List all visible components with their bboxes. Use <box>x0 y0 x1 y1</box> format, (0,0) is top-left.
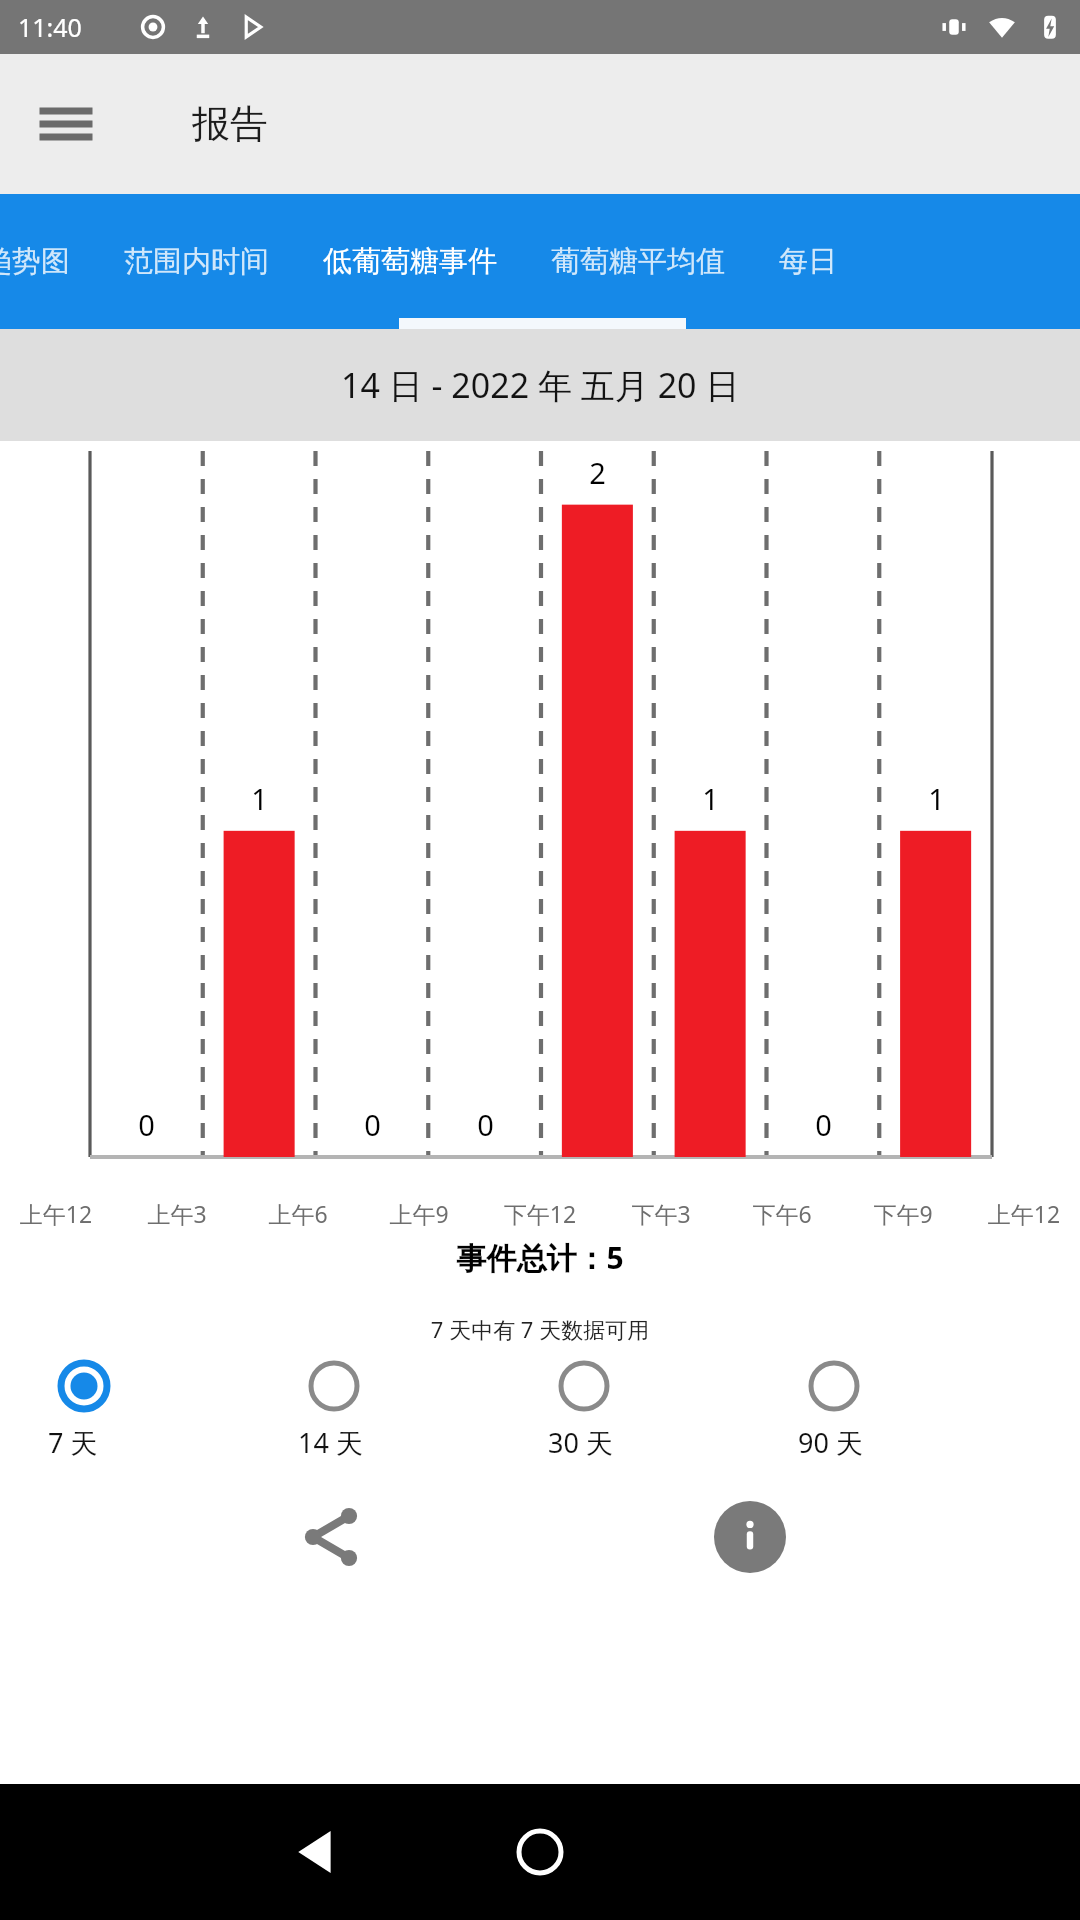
button[interactable]: 趋势图 <box>0 194 97 329</box>
staticText: 事件总计：5 <box>0 1237 1080 1278</box>
staticText: 1 <box>702 779 719 818</box>
staticText: 1 <box>928 779 945 818</box>
staticText: 下午12 <box>484 1198 596 1229</box>
button[interactable]: 低葡萄糖事件 <box>296 194 524 329</box>
staticText: 2 <box>589 453 606 492</box>
staticText: 下午3 <box>605 1198 717 1229</box>
staticText: 每日 <box>779 243 837 280</box>
staticText: 0 <box>815 1105 832 1144</box>
staticText: 低葡萄糖事件 <box>323 243 497 280</box>
staticText: 1 <box>251 779 268 818</box>
button[interactable]: 30 天 <box>540 1360 790 1461</box>
staticText: 上午9 <box>363 1198 475 1229</box>
button[interactable]: 14 天 <box>290 1360 540 1461</box>
staticText: 上午3 <box>121 1198 233 1229</box>
button[interactable]: 返回 <box>272 1806 364 1898</box>
button[interactable]: 范围内时间 <box>97 194 296 329</box>
staticText: 下午6 <box>726 1198 838 1229</box>
staticText: 14 天 <box>298 1424 363 1461</box>
staticText: 葡萄糖平均值 <box>551 243 725 280</box>
staticText: 上午12 <box>968 1198 1080 1229</box>
staticText: 0 <box>138 1105 155 1144</box>
staticText: 0 <box>364 1105 381 1144</box>
button[interactable]: 信息 <box>704 1491 796 1583</box>
button[interactable]: 葡萄糖平均值 <box>524 194 752 329</box>
button[interactable]: 每日 <box>752 194 864 329</box>
button[interactable]: 主屏幕 <box>494 1806 586 1898</box>
staticText: 90 天 <box>798 1424 863 1461</box>
staticText: 0 <box>477 1105 494 1144</box>
staticText: 7 天 <box>48 1424 98 1461</box>
staticText: 上午6 <box>242 1198 354 1229</box>
button[interactable]: 分享 <box>285 1491 377 1583</box>
staticText: 30 天 <box>548 1424 613 1461</box>
staticText: 7 天中有 7 天数据可用 <box>0 1314 1080 1344</box>
staticText: 14 日 - 2022 年 五月 20 日 <box>341 362 740 408</box>
staticText: 上午12 <box>0 1198 112 1229</box>
button[interactable]: 7 天 <box>40 1360 290 1461</box>
staticText: 11:40 <box>18 10 82 44</box>
staticText: 报告 <box>192 100 268 148</box>
button[interactable]: 菜单 <box>26 84 106 164</box>
staticText: 趋势图 <box>0 243 70 280</box>
button[interactable]: 90 天 <box>790 1360 1040 1461</box>
staticText: 范围内时间 <box>124 243 269 280</box>
staticText: 下午9 <box>847 1198 959 1229</box>
